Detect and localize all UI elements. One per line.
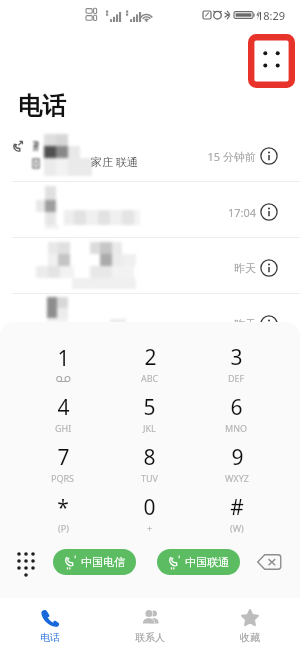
button[interactable]: 昨天 xyxy=(0,238,300,294)
staticText: MNO xyxy=(225,422,248,434)
staticText: 联系人 xyxy=(135,631,165,644)
staticText: 3 xyxy=(230,343,243,372)
staticText: 收藏 xyxy=(240,631,260,644)
staticText: 昨天 xyxy=(234,261,256,275)
staticText: 5 xyxy=(143,393,156,422)
button[interactable]: 2 xyxy=(106,338,193,388)
staticText: * xyxy=(57,493,69,522)
staticText: (W) xyxy=(230,522,244,534)
staticText: JKL xyxy=(143,422,156,434)
button[interactable]: * xyxy=(20,488,106,538)
button[interactable]: Keypad xyxy=(14,551,38,575)
staticText: TUV xyxy=(141,472,158,484)
staticText: (P) xyxy=(58,522,69,534)
button[interactable]: 联系人 xyxy=(100,602,200,650)
staticText: ABC xyxy=(141,372,159,384)
button[interactable]: 5 xyxy=(106,388,193,438)
button[interactable]: 家庄 联通 xyxy=(0,126,300,182)
button[interactable]: 中国联通 xyxy=(157,549,240,575)
staticText: 家庄 联通 xyxy=(91,154,138,169)
button[interactable]: 收藏 xyxy=(200,602,300,650)
staticText: 4 xyxy=(57,393,70,422)
button[interactable]: 中国电信 xyxy=(53,549,136,575)
button[interactable]: 1 xyxy=(20,338,106,388)
button[interactable]: Delete xyxy=(252,549,286,574)
staticText: 昨天 xyxy=(234,317,256,331)
staticText: 0 xyxy=(143,493,156,522)
staticText: PQRS xyxy=(51,472,75,484)
staticText: # xyxy=(230,493,244,522)
button[interactable]: 3 xyxy=(193,338,280,388)
button[interactable]: 17:04 xyxy=(0,182,300,238)
staticText: GHI xyxy=(55,422,72,434)
staticText: 7 xyxy=(57,443,70,472)
button[interactable]: 6 xyxy=(193,388,280,438)
staticText: 电话 xyxy=(40,631,60,644)
button[interactable]: # xyxy=(193,488,280,538)
staticText: WXYZ xyxy=(225,472,249,484)
button[interactable]: 电话 xyxy=(0,602,100,650)
button[interactable]: 0 xyxy=(106,488,193,538)
staticText: 6 xyxy=(230,393,243,422)
button[interactable]: 8 xyxy=(106,438,193,488)
staticText: 2 xyxy=(144,343,157,372)
staticText: 中国联通 xyxy=(185,555,229,569)
staticText: 中国电信 xyxy=(81,555,125,569)
staticText: 9 xyxy=(231,443,244,472)
staticText: + xyxy=(147,522,153,534)
staticText: DEF xyxy=(228,372,245,384)
button[interactable]: 9 xyxy=(193,438,280,488)
staticText: 1 xyxy=(57,344,70,373)
button[interactable]: 7 xyxy=(20,438,106,488)
staticText: 18:29 xyxy=(257,8,286,23)
staticText: 17:04 xyxy=(227,205,256,220)
staticText: 8 xyxy=(143,443,156,472)
staticText: 电话 xyxy=(18,91,66,121)
button[interactable]: 4 xyxy=(20,388,106,438)
button[interactable]: 昨天 xyxy=(0,294,300,350)
button[interactable]: More options xyxy=(248,34,295,88)
staticText: 15 分钟前 xyxy=(207,149,256,164)
